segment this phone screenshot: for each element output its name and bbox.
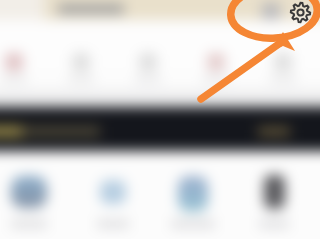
button[interactable]: Quick action: [0, 50, 36, 90]
button[interactable]: Feature: [240, 175, 308, 233]
button[interactable]: Feature: [79, 180, 147, 238]
button[interactable]: Documents: [262, 3, 280, 19]
button[interactable]: Promo banner: [0, 107, 320, 151]
button[interactable]: Quick action: [59, 50, 103, 90]
button[interactable]: Quick action: [261, 50, 305, 90]
button[interactable]: Settings: [289, 1, 312, 24]
button[interactable]: Quick action: [126, 50, 170, 90]
button[interactable]: Feature: [0, 176, 63, 234]
button[interactable]: Feature: [159, 176, 227, 234]
button[interactable]: Quick action: [194, 50, 238, 90]
